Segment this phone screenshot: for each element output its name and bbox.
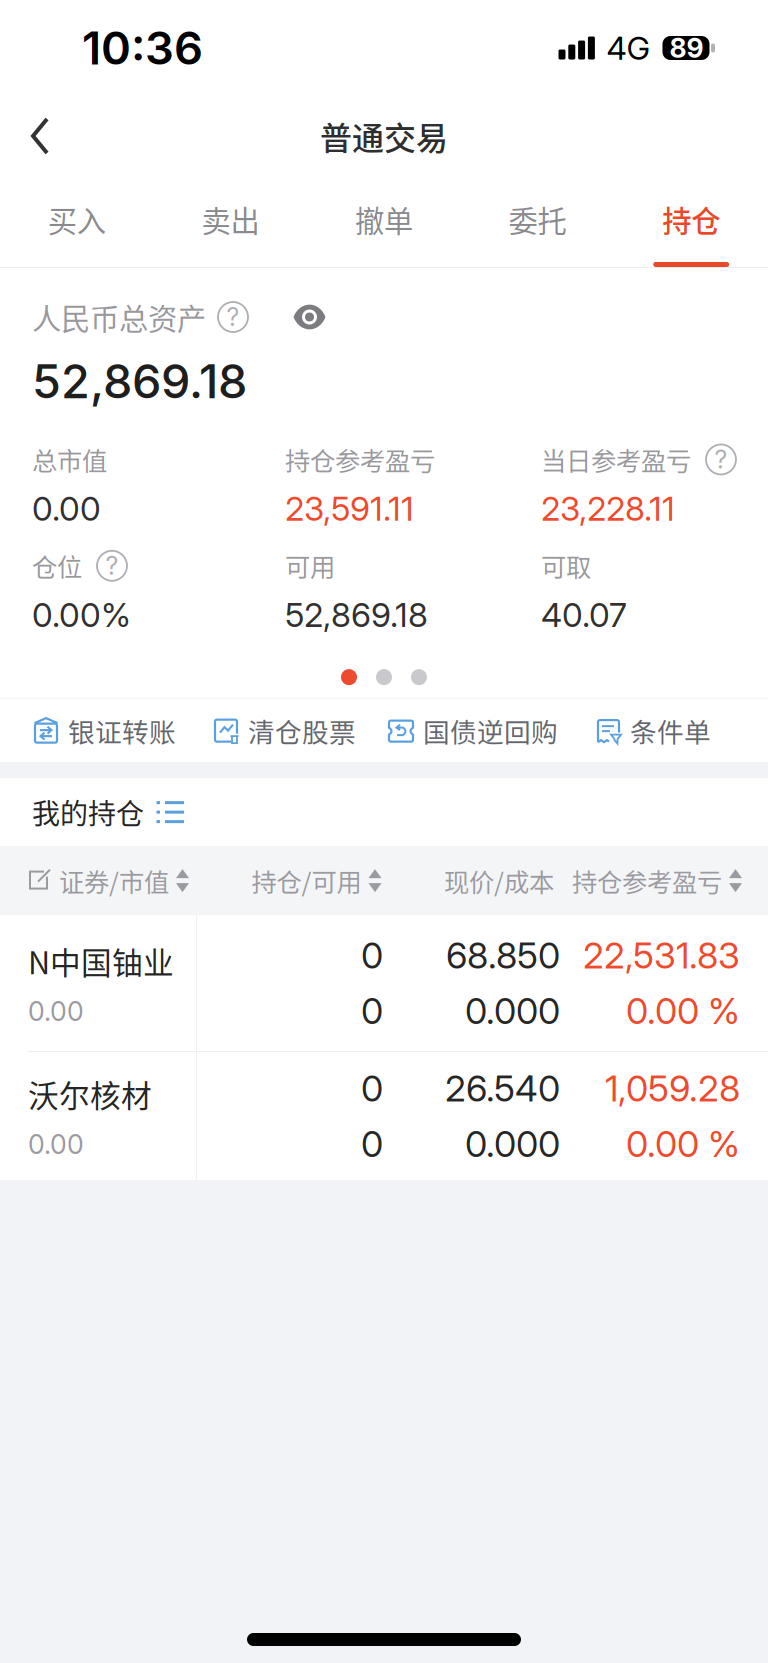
staticText: 52,869.18 (285, 595, 428, 635)
staticText: 国债逆回购 (423, 711, 558, 750)
staticText: 52,869.18 (32, 353, 247, 409)
staticText: 89 (669, 32, 703, 64)
staticText: 23,591.11 (285, 488, 414, 529)
button[interactable]: Back (0, 97, 81, 175)
button[interactable]: 撤单 (307, 188, 461, 267)
button[interactable]: Sort holdings (144, 787, 185, 838)
staticText: 条件单 (630, 711, 711, 750)
staticText: ? (105, 551, 118, 581)
staticText: 沃尔核材 (28, 1072, 152, 1116)
staticText: 10:36 (82, 21, 203, 75)
staticText: 人民币总资产 (32, 296, 206, 338)
button[interactable]: 条件单 (593, 699, 733, 762)
staticText: 持仓参考盈亏 (572, 862, 722, 899)
staticText: 银证转账 (68, 711, 176, 750)
staticText: 撤单 (355, 198, 413, 240)
staticText: 0.00% (32, 595, 131, 635)
staticText: 0.00 (32, 488, 101, 529)
staticText: 现价/成本 (444, 862, 554, 899)
staticText: 仓位 (32, 547, 82, 584)
button[interactable]: 持仓 (614, 188, 768, 267)
staticText: 可取 (541, 547, 591, 584)
staticText: 0.00 (28, 1128, 84, 1160)
staticText: ? (714, 444, 727, 474)
staticText: 0.00 (28, 995, 84, 1027)
staticText: 4G (606, 29, 650, 67)
staticText: 清仓股票 (248, 711, 356, 750)
staticText: 26.540 (445, 1067, 560, 1110)
staticText: 0.00 % (626, 1122, 740, 1166)
staticText: 卖出 (201, 198, 259, 240)
staticText: 0 (361, 1067, 383, 1110)
staticText: ? (226, 302, 239, 332)
staticText: 持仓参考盈亏 (285, 441, 435, 478)
button[interactable]: 国债逆回购 (386, 699, 593, 762)
button[interactable]: N中国铀业 (0, 915, 768, 1051)
staticText: 持仓 (662, 198, 720, 240)
staticText: 总市值 (32, 441, 107, 478)
button[interactable]: 清仓股票 (211, 699, 386, 762)
staticText: 我的持仓 (32, 792, 144, 832)
staticText: 买入 (48, 198, 106, 240)
staticText: 持仓/可用 (251, 862, 361, 899)
staticText: 委托 (509, 198, 567, 240)
staticText: 0.000 (465, 989, 560, 1033)
staticText: 0 (361, 934, 383, 977)
staticText: 0 (361, 1122, 383, 1166)
button[interactable]: 买入 (0, 188, 154, 267)
staticText: 普通交易 (320, 113, 448, 159)
button[interactable]: 银证转账 (31, 699, 211, 762)
button[interactable]: 沃尔核材 (0, 1052, 768, 1180)
staticText: 23,228.11 (541, 488, 675, 529)
staticText: 证券/市值 (59, 862, 169, 899)
staticText: 0.00 % (626, 989, 740, 1033)
staticText: 1,059.28 (605, 1067, 740, 1110)
staticText: 可用 (285, 547, 335, 584)
staticText: 0.000 (465, 1122, 560, 1166)
button[interactable]: 委托 (461, 188, 614, 267)
staticText: N中国铀业 (28, 939, 174, 983)
staticText: 40.07 (541, 595, 627, 635)
staticText: 当日参考盈亏 (541, 441, 691, 478)
staticText: 0 (361, 989, 383, 1033)
staticText: 22,531.83 (583, 934, 740, 977)
staticText: 68.850 (446, 934, 560, 977)
button[interactable]: 卖出 (154, 188, 307, 267)
button[interactable]: Toggle balance visibility (248, 299, 326, 334)
